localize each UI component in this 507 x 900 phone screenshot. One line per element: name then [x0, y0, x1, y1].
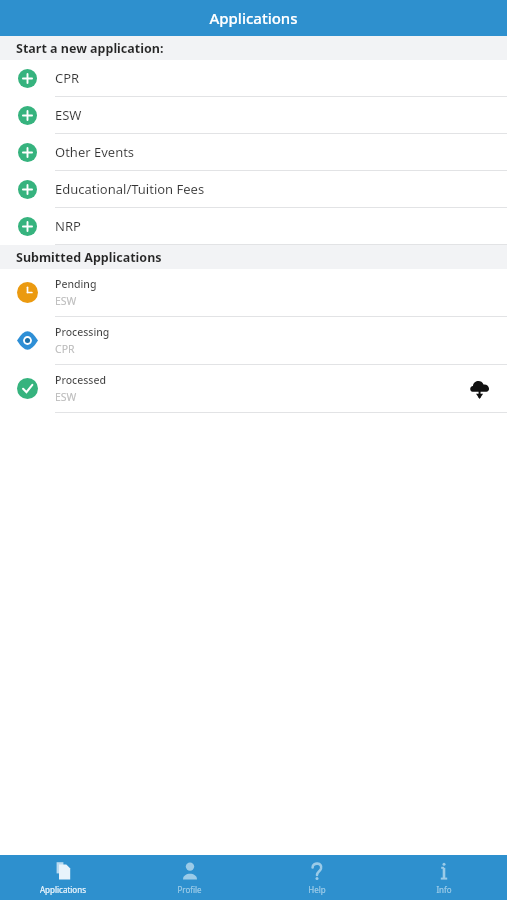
- staticText: Processed: [55, 373, 106, 387]
- staticText: ESW: [55, 106, 82, 124]
- button[interactable]: Processed: [0, 365, 507, 413]
- staticText: Applications: [40, 884, 86, 895]
- staticText: Profile: [177, 884, 202, 895]
- button[interactable]: Help: [253, 855, 380, 900]
- staticText: Applications: [209, 8, 298, 28]
- staticText: Submitted Applications: [16, 249, 162, 266]
- button[interactable]: Other Events: [0, 134, 507, 171]
- button[interactable]: Applications: [0, 855, 126, 900]
- staticText: Help: [308, 884, 326, 895]
- staticText: Start a new application:: [16, 40, 164, 57]
- staticText: CPR: [55, 69, 80, 87]
- staticText: CPR: [55, 342, 75, 356]
- button[interactable]: Educational/Tuition Fees: [0, 171, 507, 208]
- staticText: ESW: [55, 294, 77, 308]
- button[interactable]: Info: [380, 855, 507, 900]
- button[interactable]: Pending: [0, 269, 507, 317]
- staticText: Other Events: [55, 143, 135, 161]
- button[interactable]: Profile: [126, 855, 253, 900]
- button[interactable]: ESW: [0, 97, 507, 134]
- button[interactable]: NRP: [0, 208, 507, 245]
- staticText: Info: [436, 884, 452, 895]
- button[interactable]: CPR: [0, 60, 507, 97]
- staticText: NRP: [55, 217, 81, 235]
- button[interactable]: Download: [452, 365, 507, 412]
- button[interactable]: Processing: [0, 317, 507, 365]
- staticText: ESW: [55, 390, 77, 404]
- staticText: Pending: [55, 277, 97, 291]
- staticText: Processing: [55, 325, 110, 339]
- staticText: Educational/Tuition Fees: [55, 180, 205, 198]
